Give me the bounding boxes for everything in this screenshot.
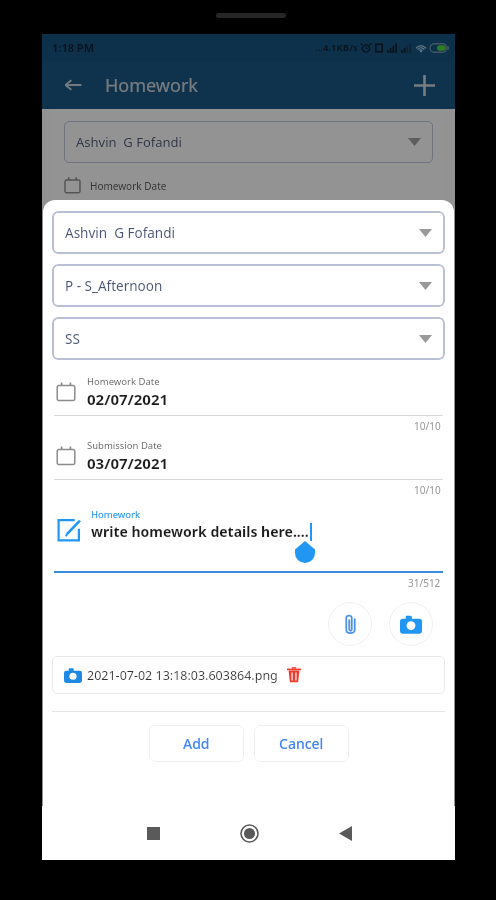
staticText: Homework <box>105 73 198 98</box>
staticText: 03/07/2021 <box>87 453 169 473</box>
button[interactable]: Back <box>320 808 370 858</box>
staticText: ...4.1KB/s <box>315 41 358 54</box>
staticText: write homework details here.... <box>91 522 309 541</box>
staticText: Add <box>183 734 210 753</box>
staticText: Submission Date <box>87 439 162 452</box>
button[interactable]: Add homework <box>405 66 443 104</box>
button[interactable]: Submission Date <box>56 439 445 473</box>
staticText: SS <box>65 330 80 348</box>
button[interactable]: Ashvin G Fofandi <box>52 211 445 254</box>
button[interactable]: Ashvin G Fofandi <box>64 121 433 163</box>
staticText: 1:18 PM <box>52 40 95 55</box>
staticText: 10/10 <box>414 419 441 433</box>
button[interactable]: Take photo <box>389 602 433 646</box>
button[interactable]: Attach file <box>328 602 372 646</box>
button[interactable]: P - S_Afternoon <box>52 264 445 307</box>
button[interactable]: Recent apps <box>128 808 178 858</box>
button[interactable]: Add <box>149 725 244 762</box>
staticText: Homework <box>91 508 141 521</box>
button[interactable]: Cancel <box>254 725 349 762</box>
staticText: Cancel <box>279 734 324 753</box>
button[interactable]: Home <box>224 808 274 858</box>
staticText: 2021-07-02 13:18:03.603864.png <box>87 667 278 684</box>
staticText: Homework Date <box>87 375 160 388</box>
staticText: Homework Date <box>90 179 167 193</box>
staticText: Ashvin G Fofandi <box>65 224 175 242</box>
button[interactable]: Back <box>54 66 92 104</box>
staticText: 02/07/2021 <box>87 389 169 409</box>
staticText: 10/10 <box>414 483 441 497</box>
staticText: Ashvin G Fofandi <box>76 133 182 151</box>
staticText: P - S_Afternoon <box>65 277 163 295</box>
button[interactable]: Homework Date <box>56 375 445 409</box>
button[interactable]: SS <box>52 317 445 360</box>
staticText: 31/512 <box>408 576 441 590</box>
button[interactable]: 2021-07-02 13:18:03.603864.png <box>52 656 445 694</box>
